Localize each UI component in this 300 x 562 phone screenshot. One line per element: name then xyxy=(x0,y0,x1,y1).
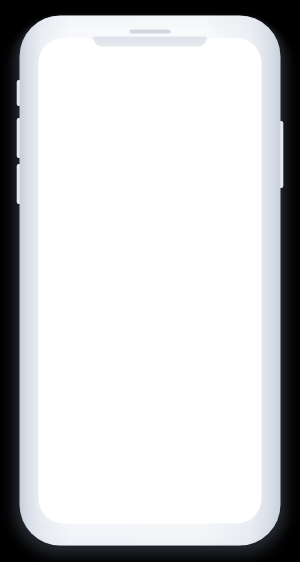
button[interactable]: Blank phone device mockup xyxy=(0,0,300,562)
